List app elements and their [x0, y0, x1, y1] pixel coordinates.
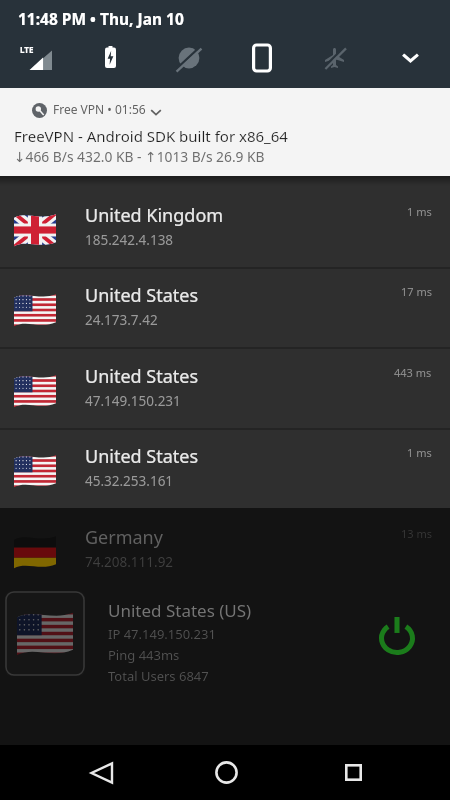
staticText: United States: [85, 444, 199, 469]
staticText: 185.242.4.138: [85, 231, 174, 249]
staticText: United States: [85, 283, 199, 308]
staticText: Total Users 6847: [108, 667, 209, 685]
button[interactable]: [252, 45, 272, 71]
staticText: 1 ms: [407, 445, 432, 460]
button[interactable]: United Kingdom: [0, 187, 450, 267]
button[interactable]: [403, 53, 418, 63]
button[interactable]: [89, 762, 114, 784]
staticText: ↓466 B/s 432.0 KB - ↑1013 B/s 26.9 KB: [14, 147, 265, 166]
staticText: 13 ms: [401, 526, 432, 541]
button[interactable]: United States: [0, 267, 450, 347]
staticText: 11:48 PM • Thu, Jan 10: [18, 8, 184, 29]
staticText: IP 47.149.150.231: [108, 625, 216, 643]
staticText: 443 ms: [394, 365, 432, 380]
button[interactable]: [105, 46, 116, 68]
staticText: United States (US): [108, 599, 252, 622]
button[interactable]: Germany: [0, 509, 450, 589]
staticText: 1 ms: [407, 204, 432, 219]
button[interactable]: [379, 617, 415, 655]
button[interactable]: [215, 761, 238, 784]
button[interactable]: [345, 764, 362, 781]
button[interactable]: United States: [0, 348, 450, 428]
staticText: FreeVPN - Android SDK built for x86_64: [14, 126, 288, 146]
staticText: 24.173.7.42: [85, 311, 158, 329]
staticText: 47.149.150.231: [85, 392, 181, 410]
staticText: 17 ms: [401, 284, 432, 299]
button[interactable]: [176, 45, 202, 71]
button[interactable]: [323, 46, 347, 70]
button[interactable]: United States: [0, 428, 450, 508]
staticText: United Kingdom: [85, 203, 224, 228]
staticText: Germany: [85, 525, 163, 550]
staticText: 45.32.253.161: [85, 472, 174, 490]
staticText: LTE: [20, 44, 34, 55]
staticText: United States: [85, 364, 199, 389]
button[interactable]: LTE: [20, 42, 52, 70]
button[interactable]: United States (US): [0, 589, 450, 681]
staticText: 74.208.111.92: [85, 553, 174, 571]
staticText: Free VPN • 01:56: [53, 101, 146, 117]
button[interactable]: Free VPN • 01:56: [0, 88, 450, 176]
staticText: Ping 443ms: [108, 646, 180, 664]
